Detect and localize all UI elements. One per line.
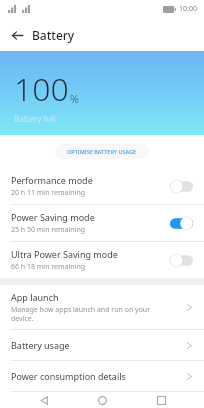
button[interactable]: Power Saving mode [0,205,204,241]
staticText: Power Saving mode [11,211,95,223]
staticText: App launch [11,291,59,303]
staticText: Battery usage [11,339,70,351]
button[interactable]: OPTIMISE BATTERY USAGE [55,144,149,159]
staticText: Power consumption details [11,370,126,382]
staticText: 20 h 11 min remaining [11,188,86,198]
staticText: Ultra Power Saving mode [11,248,118,260]
staticText: OPTIMISE BATTERY USAGE [67,148,137,155]
staticText: Performance mode [11,174,93,186]
button[interactable]: Recent apps [146,392,176,408]
staticText: Battery full [14,113,56,124]
staticText: 10:00 [179,4,197,14]
staticText: 100 [14,67,69,111]
staticText: Battery [32,27,75,43]
button[interactable]: Power consumption details [0,361,204,391]
button[interactable]: Performance mode [0,168,204,204]
staticText: 25 h 50 min remaining [11,225,86,235]
button[interactable]: Back [7,25,27,45]
button[interactable]: App launch [0,285,204,329]
staticText: % [70,91,79,106]
staticText: 66 h 18 min remaining [11,262,86,272]
button[interactable]: Battery usage [0,330,204,360]
staticText: Manage how apps launch and run on your d… [11,305,160,323]
button[interactable]: Back [29,392,59,408]
button[interactable]: Ultra Power Saving mode [0,242,204,278]
button[interactable]: Home [87,392,117,408]
